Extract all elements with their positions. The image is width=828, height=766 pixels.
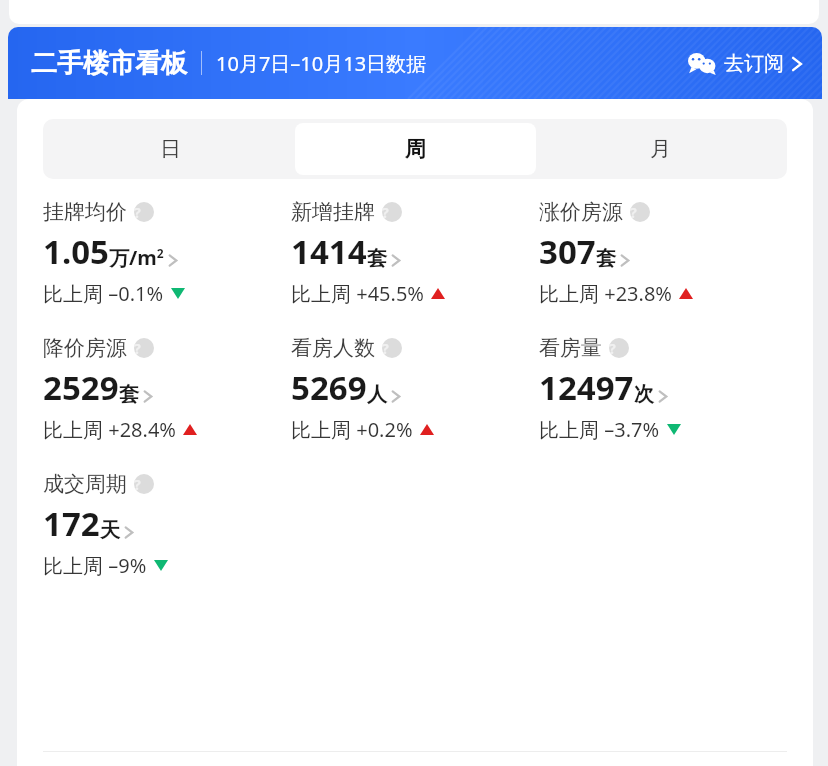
button[interactable]: 挂牌均价 [43,199,185,307]
other: 说明 [134,474,154,494]
staticText: 日 [160,136,181,162]
staticText: 周 [405,136,426,162]
other: 说明 [134,202,154,222]
staticText: ? [382,203,389,222]
staticText: 比上周 –0.1% [43,280,164,307]
staticText: 万/m2 [109,244,164,271]
button[interactable]: 看房人数 [291,335,434,443]
staticText: 天 [100,518,120,543]
staticText: 降价房源 [43,335,127,361]
staticText: 比上周 –3.7% [539,416,660,443]
staticText: 看房人数 [291,335,375,361]
staticText: 套 [367,246,387,271]
staticText: ? [134,339,141,358]
other: 说明 [609,338,629,358]
staticText: 套 [119,382,139,407]
staticText: 新增挂牌 [291,199,375,225]
button[interactable]: 降价房源 [43,335,197,443]
staticText: 比上周 +28.4% [43,416,176,443]
button[interactable]: 日 [49,123,291,175]
staticText: 看房量 [539,335,602,361]
staticText: ? [609,339,616,358]
other: 说明 [630,202,650,222]
staticText: 月 [650,136,671,162]
staticText: 12497 [539,365,634,410]
staticText: 5269 [291,365,367,410]
staticText: 次 [634,382,654,407]
staticText: 人 [367,382,387,407]
staticText: 1414 [291,229,367,274]
button[interactable]: 涨价房源 [539,199,693,307]
staticText: ? [134,475,141,494]
staticText: 挂牌均价 [43,199,127,225]
button[interactable]: 成交周期 [43,471,168,579]
staticText: 比上周 +45.5% [291,280,424,307]
staticText: 比上周 +0.2% [291,416,413,443]
staticText: 1.05 [43,229,109,274]
button[interactable]: 月 [540,123,781,175]
staticText: 比上周 +23.8% [539,280,672,307]
staticText: 涨价房源 [539,199,623,225]
button[interactable]: 看房量 [539,335,681,443]
other: 说明 [382,338,402,358]
staticText: 去订阅 [724,51,784,76]
staticText: 172 [43,501,100,546]
other: WeChat [688,53,716,75]
staticText: 比上周 –9% [43,552,147,579]
button[interactable]: 新增挂牌 [291,199,445,307]
staticText: 套 [596,246,616,271]
staticText: 成交周期 [43,471,127,497]
staticText: 二手楼市看板 [31,47,187,80]
staticText: 2529 [43,365,119,410]
staticText: ? [382,339,389,358]
staticText: ? [134,203,141,222]
other: 说明 [134,338,154,358]
staticText: 307 [539,229,596,274]
button[interactable]: WeChat [688,45,804,82]
staticText: ? [630,203,637,222]
staticText: 10月7日–10月13日数据 [216,50,427,77]
other: 说明 [382,202,402,222]
button[interactable]: 周 [295,123,536,175]
